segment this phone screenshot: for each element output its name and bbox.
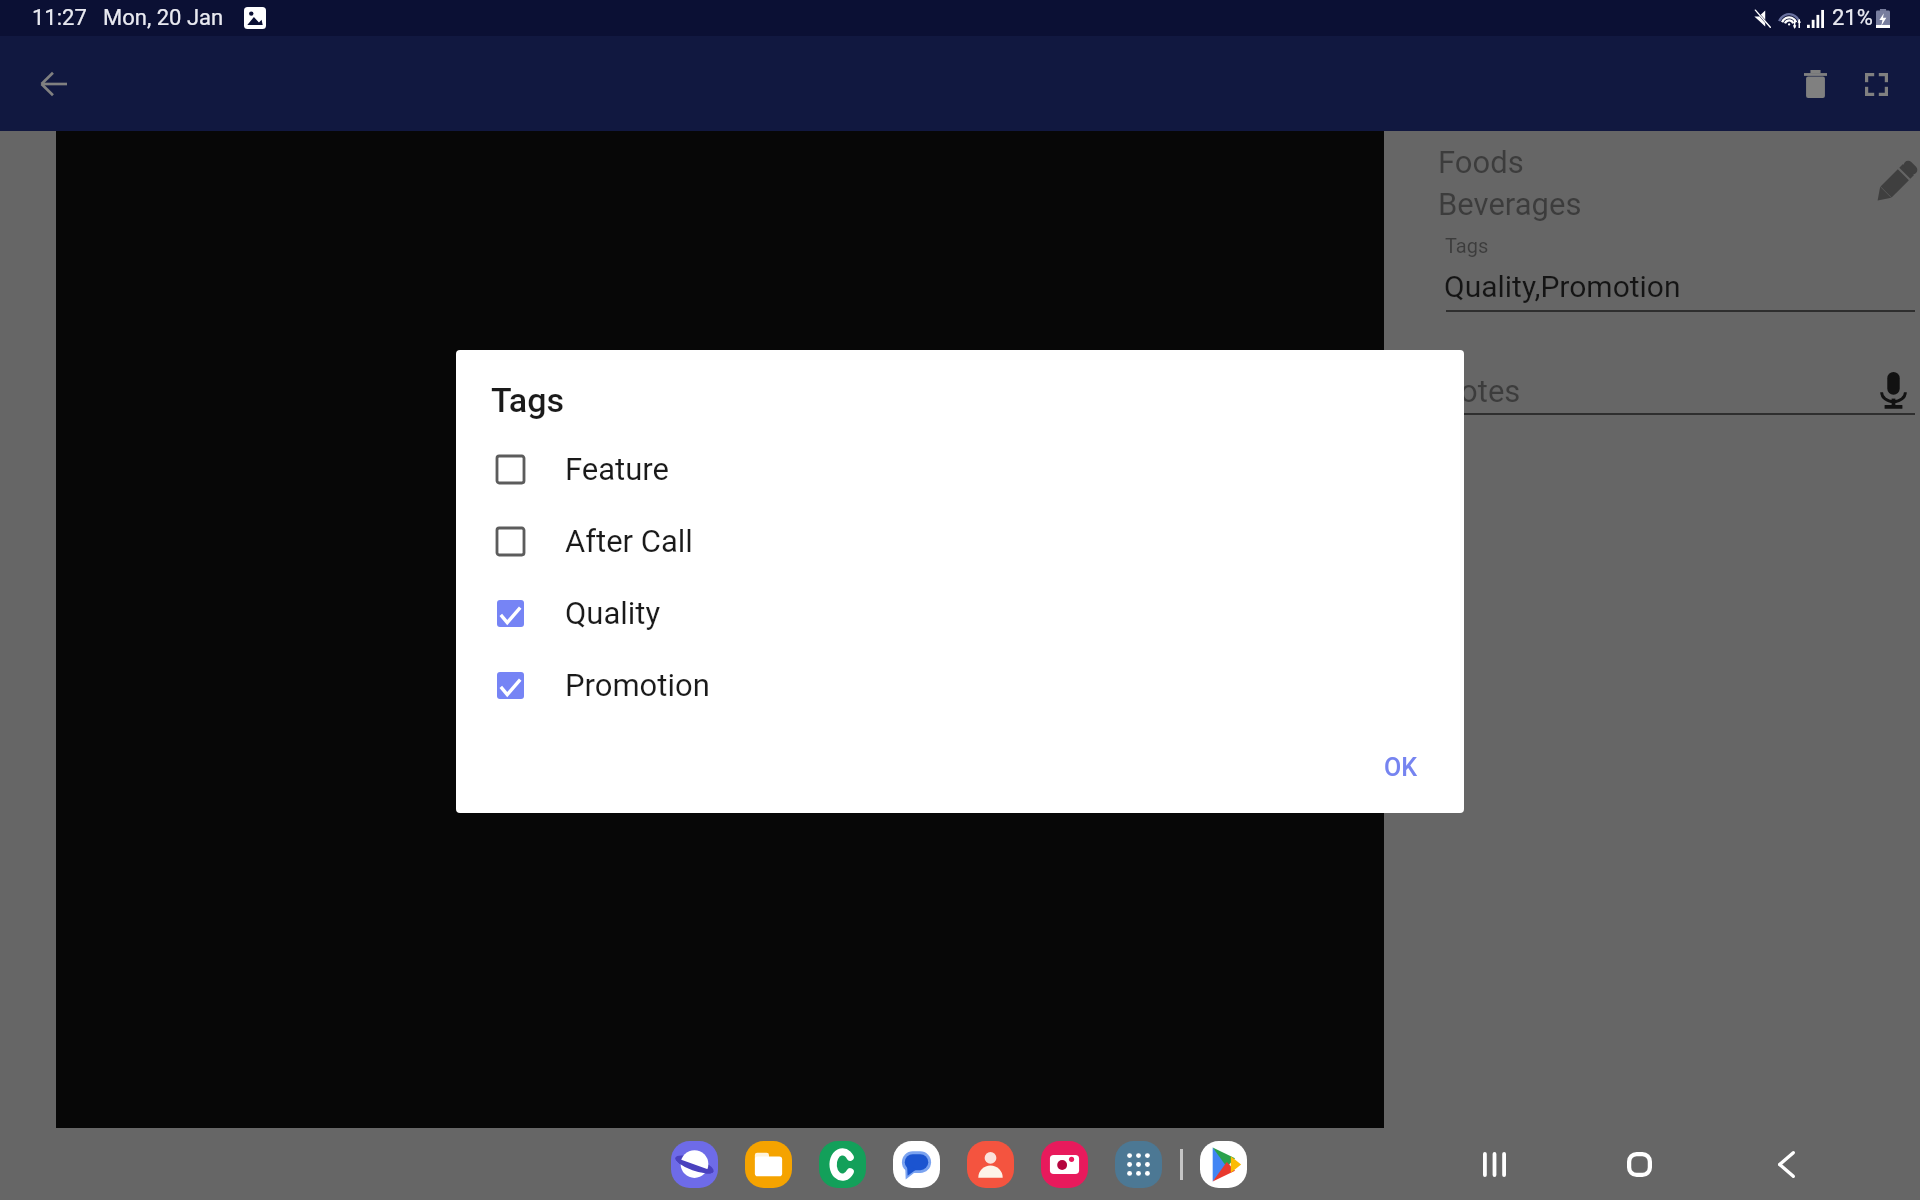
button[interactable]: Notes xyxy=(1438,367,1915,417)
staticText: Tags xyxy=(491,380,565,420)
button[interactable]: Voice input xyxy=(1865,363,1920,419)
button[interactable]: Edit xyxy=(1868,154,1920,210)
button[interactable]: Messages xyxy=(893,1141,940,1188)
button[interactable]: Back xyxy=(1758,1136,1814,1192)
button[interactable]: After Call xyxy=(456,510,1464,572)
staticText: Quality,Promotion xyxy=(1444,269,1681,304)
button[interactable]: Foods xyxy=(1438,137,1858,179)
button[interactable]: Camera xyxy=(1041,1141,1088,1188)
button[interactable]: Fullscreen xyxy=(1840,48,1912,120)
button[interactable]: Home xyxy=(1611,1136,1667,1192)
button[interactable]: Contacts xyxy=(967,1141,1014,1188)
button[interactable]: My Files xyxy=(745,1141,792,1188)
button[interactable]: Internet xyxy=(671,1141,718,1188)
staticText: Feature xyxy=(565,451,670,487)
button[interactable]: Feature xyxy=(456,438,1464,500)
button[interactable]: Tags xyxy=(1438,227,1915,314)
button[interactable]: Back xyxy=(18,48,90,120)
staticText: Foods xyxy=(1438,144,1524,180)
staticText: 21% xyxy=(1832,5,1873,31)
button[interactable]: Delete xyxy=(1779,48,1851,120)
button[interactable]: Promotion xyxy=(456,654,1464,716)
button[interactable]: Quality xyxy=(456,582,1464,644)
staticText: Mon, 20 Jan xyxy=(103,5,224,31)
staticText: Notes xyxy=(1438,373,1521,409)
staticText: Quality xyxy=(565,595,661,631)
button[interactable]: OK xyxy=(1361,741,1441,793)
staticText: After Call xyxy=(565,523,693,559)
button[interactable]: Beverages xyxy=(1438,179,1858,221)
button[interactable]: Phone xyxy=(819,1141,866,1188)
staticText: OK xyxy=(1384,753,1418,782)
staticText: Beverages xyxy=(1438,186,1582,222)
staticText: Tags xyxy=(1445,234,1489,257)
button[interactable]: Play Store xyxy=(1200,1141,1247,1188)
staticText: 11:27 xyxy=(32,5,87,31)
button[interactable]: Apps xyxy=(1115,1141,1162,1188)
staticText: Promotion xyxy=(565,667,710,703)
button[interactable]: Recents xyxy=(1466,1136,1522,1192)
